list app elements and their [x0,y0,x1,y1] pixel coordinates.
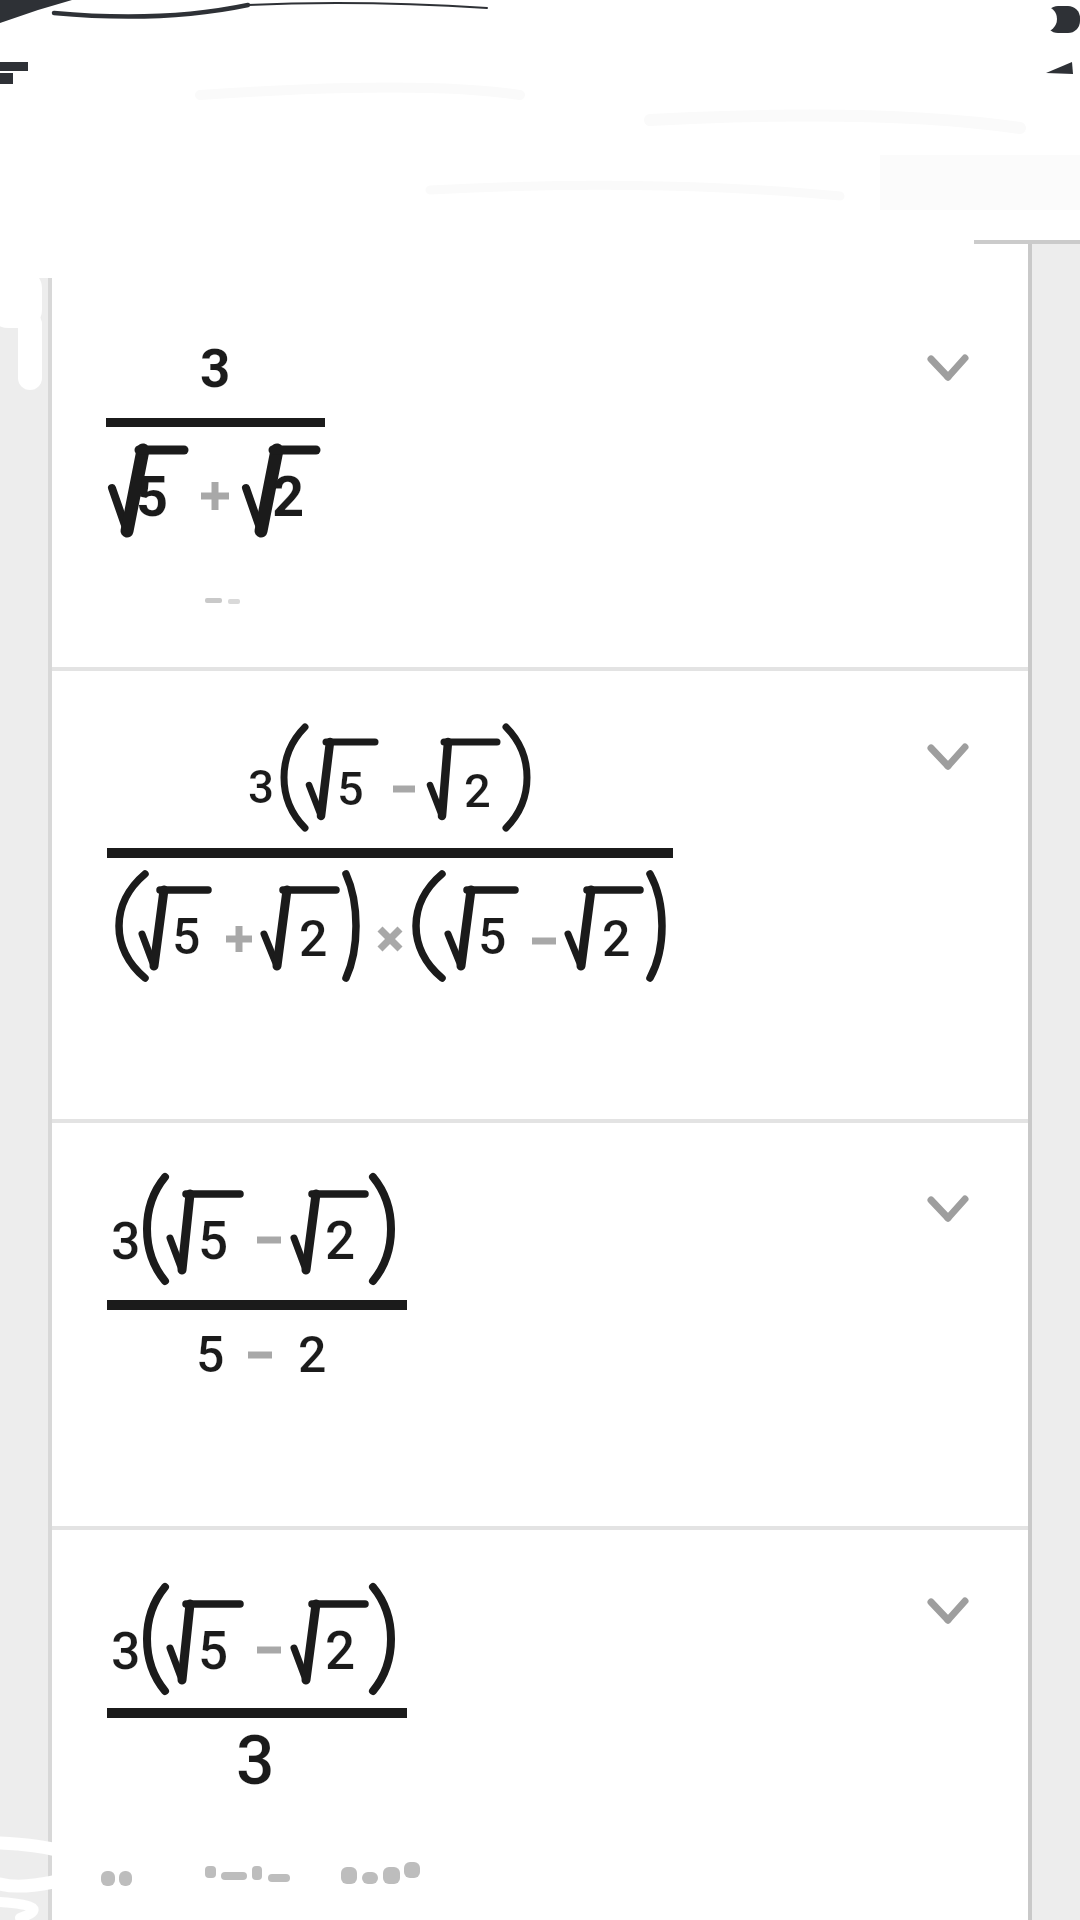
button[interactable] [52,1530,1028,1920]
staticText: 3 [111,1621,141,1682]
staticText: 5 [198,1210,229,1272]
button[interactable] [52,671,1028,1119]
staticText: 2 [464,763,491,818]
staticText: 2 [272,464,305,530]
staticText: 5 [196,1326,225,1385]
staticText: 3 [248,760,275,814]
staticText: 5 [478,908,507,967]
staticText: 3 [111,1211,141,1272]
staticText: 5 [172,908,201,967]
staticText: 2 [298,1326,327,1385]
staticText: 5 [337,761,364,816]
staticText: 2 [325,1620,356,1682]
staticText: 2 [325,1210,356,1272]
staticText: 2 [602,910,631,969]
staticText: 3 [236,1721,275,1801]
button[interactable] [52,1123,1028,1526]
staticText: 5 [136,464,169,530]
staticText: 2 [299,910,328,969]
staticText: 5 [198,1620,229,1682]
staticText: 3 [200,338,231,400]
button[interactable] [52,244,1028,667]
